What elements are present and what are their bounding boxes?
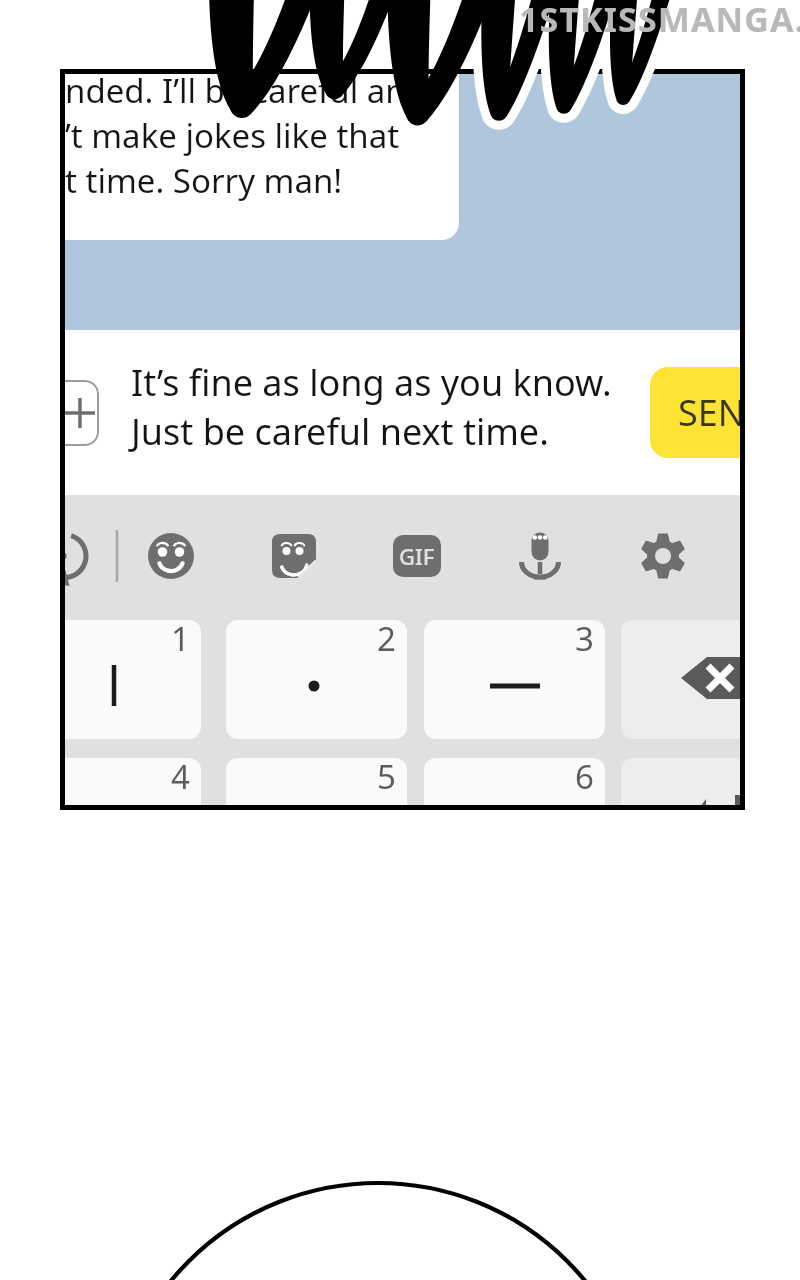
- button[interactable]: Voice input: [506, 522, 574, 590]
- button[interactable]: Add attachment: [65, 380, 99, 446]
- button[interactable]: 6: [424, 758, 605, 805]
- button[interactable]: 4: [65, 758, 201, 805]
- staticText: 1STKISSMANGA.ME: [519, 0, 800, 42]
- staticText: 6: [575, 758, 594, 799]
- button[interactable]: Stickers: [260, 522, 328, 590]
- staticText: GIF: [399, 541, 435, 571]
- staticText: ’t make jokes like that: [65, 113, 400, 158]
- button[interactable]: nded. I’ll be careful and: [65, 74, 459, 240]
- button[interactable]: SEND: [650, 367, 740, 458]
- staticText: t time. Sorry man!: [65, 158, 343, 203]
- staticText: nded. I’ll be careful and: [65, 74, 427, 113]
- staticText: It’s fine as long as you know.: [131, 358, 612, 407]
- button[interactable]: 1: [65, 620, 201, 739]
- button[interactable]: 2: [226, 620, 407, 739]
- staticText: Just be careful next time.: [131, 407, 549, 456]
- button[interactable]: Settings: [629, 522, 697, 590]
- staticText: SEND: [678, 388, 740, 437]
- staticText: 4: [171, 758, 190, 799]
- button[interactable]: Key: [621, 758, 740, 805]
- staticText: 2: [377, 620, 396, 661]
- button[interactable]: 3: [424, 620, 605, 739]
- button[interactable]: Key: [621, 620, 740, 739]
- staticText: 1: [171, 620, 190, 661]
- staticText: 3: [575, 620, 594, 661]
- staticText: 5: [377, 758, 396, 799]
- button[interactable]: Emoji: [137, 522, 205, 590]
- button[interactable]: GIF: [383, 522, 451, 590]
- button[interactable]: 5: [226, 758, 407, 805]
